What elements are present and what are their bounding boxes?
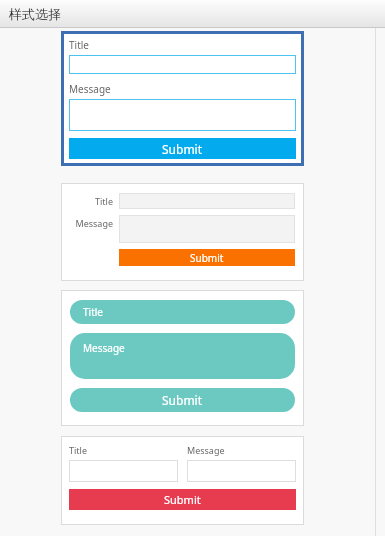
staticText: Message [65, 217, 113, 229]
staticText: 样式选择 [9, 6, 61, 22]
staticText: Title [65, 195, 113, 207]
button[interactable]: Title [70, 300, 295, 324]
button[interactable] [69, 99, 296, 131]
button[interactable] [69, 55, 296, 74]
staticText: Submit [162, 141, 203, 157]
button[interactable]: Submit [119, 249, 295, 266]
button[interactable] [69, 460, 178, 482]
button[interactable]: Submit [69, 138, 296, 159]
button[interactable]: Title [70, 300, 295, 416]
button[interactable]: Title [65, 193, 295, 271]
staticText: Title [69, 38, 89, 52]
staticText: Submit [162, 392, 203, 408]
staticText: Title [69, 444, 87, 456]
button[interactable] [119, 215, 295, 243]
staticText: Message [187, 444, 225, 456]
staticText: Message [69, 82, 111, 96]
button[interactable]: Title [69, 38, 296, 159]
staticText: Submit [190, 251, 224, 265]
button[interactable]: Submit [69, 489, 296, 510]
button[interactable]: Message [70, 333, 295, 379]
button[interactable]: Submit [70, 388, 295, 412]
staticText: Title [83, 305, 103, 319]
button[interactable] [187, 460, 296, 482]
button[interactable]: Title [69, 444, 296, 517]
staticText: Submit [164, 492, 201, 507]
button[interactable] [119, 193, 295, 209]
staticText: Message [83, 341, 125, 355]
